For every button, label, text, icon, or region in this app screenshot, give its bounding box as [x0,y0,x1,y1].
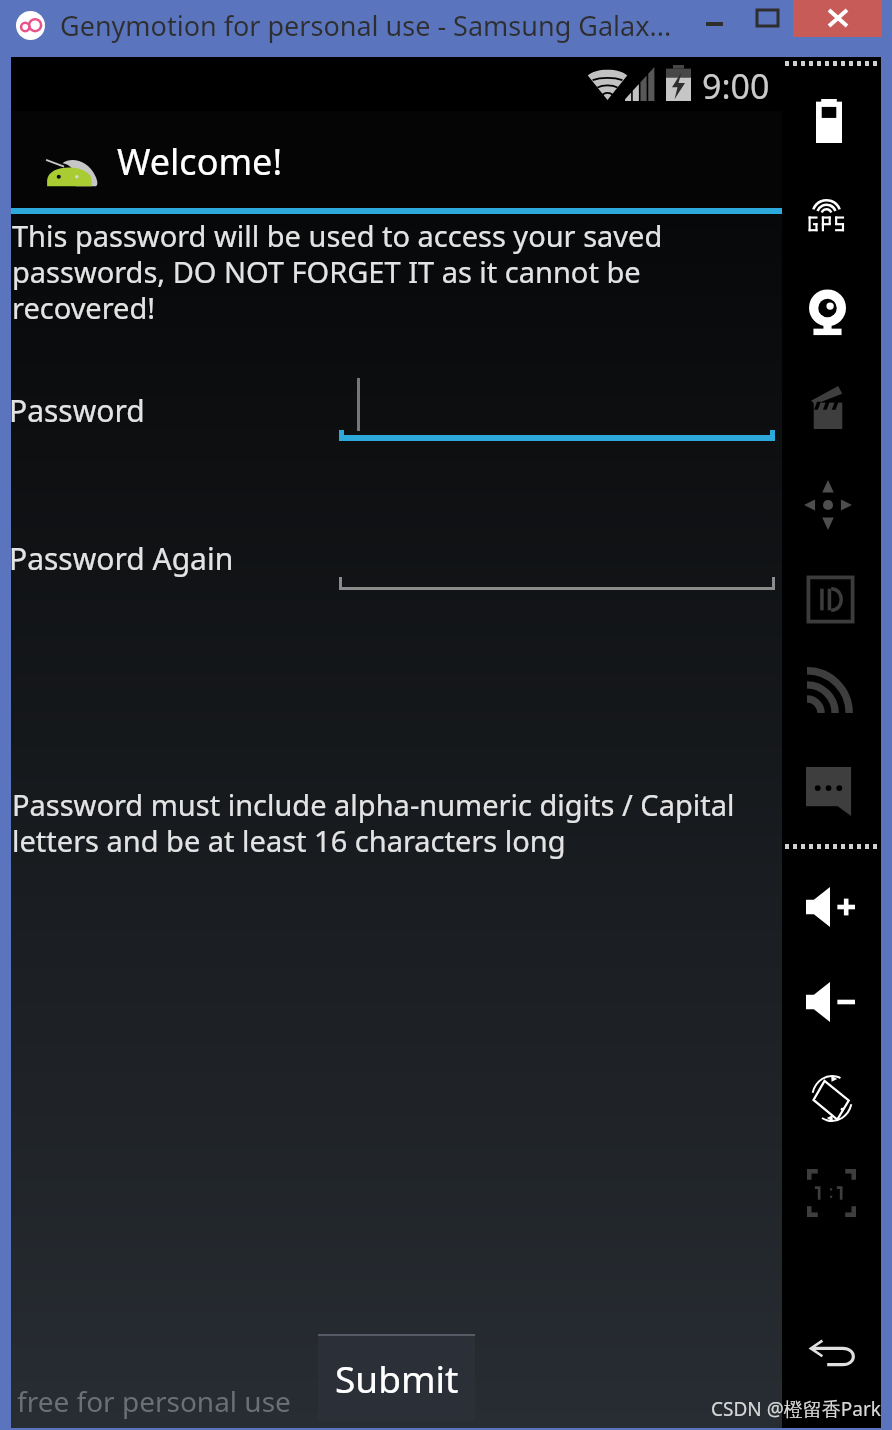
button[interactable]: Submit [318,1334,475,1421]
button[interactable]: Maximize [743,0,792,37]
button[interactable]: GPS [782,181,881,246]
button[interactable]: Zoom 1:1 [782,1155,881,1231]
staticText: Submit [335,1353,459,1403]
button[interactable]: Camera [782,276,881,350]
button[interactable]: Back [782,1326,881,1382]
button[interactable]: Accelerometer [782,466,881,544]
staticText: Password Again [9,538,234,579]
button[interactable]: Volume down [782,968,881,1036]
button[interactable]: Minimize [690,0,739,37]
staticText: 9:00 [702,63,770,109]
staticText: Password [9,390,145,431]
button[interactable]: Close [793,0,882,37]
staticText: CSDN @橙留香Park [711,1396,881,1422]
staticText: This password will be used to access you… [12,216,712,328]
staticText: Password must include alpha-numeric digi… [12,785,752,861]
button[interactable]: Network [782,658,881,727]
button[interactable]: Password again field [339,519,775,590]
button[interactable]: Identifiers [782,562,881,637]
button[interactable]: Password field [339,370,775,441]
button[interactable]: Volume up [782,873,881,941]
staticText: Welcome! [117,137,283,186]
button[interactable]: SMS [782,753,881,830]
staticText: free for personal use [17,1382,291,1420]
button[interactable]: Battery [782,85,881,157]
button[interactable]: Screen recorder [782,371,881,443]
staticText: Genymotion for personal use - Samsung Ga… [60,7,672,44]
button[interactable]: Rotate [782,1060,881,1137]
